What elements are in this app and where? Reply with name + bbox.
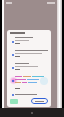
button[interactable] [7, 36, 51, 49]
button[interactable] [10, 99, 18, 104]
button[interactable] [7, 49, 51, 62]
button[interactable] [7, 93, 51, 98]
button[interactable] [31, 98, 48, 104]
button[interactable] [7, 75, 51, 88]
button[interactable] [7, 62, 51, 75]
